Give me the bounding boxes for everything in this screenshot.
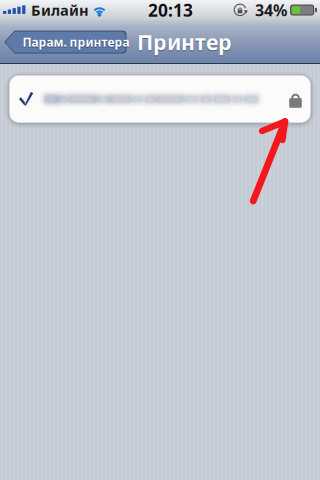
staticText: 34% [255, 0, 287, 21]
staticText: 20:13 [148, 0, 193, 21]
staticText: Парам. принтера [22, 35, 129, 51]
staticText: Принтер [137, 29, 232, 57]
staticText: Принтер [137, 28, 232, 56]
staticText: Билайн [31, 0, 89, 20]
staticText: Парам. принтера [22, 34, 129, 50]
button[interactable]: Парам. принтера [5, 30, 128, 53]
button[interactable] [9, 75, 311, 123]
